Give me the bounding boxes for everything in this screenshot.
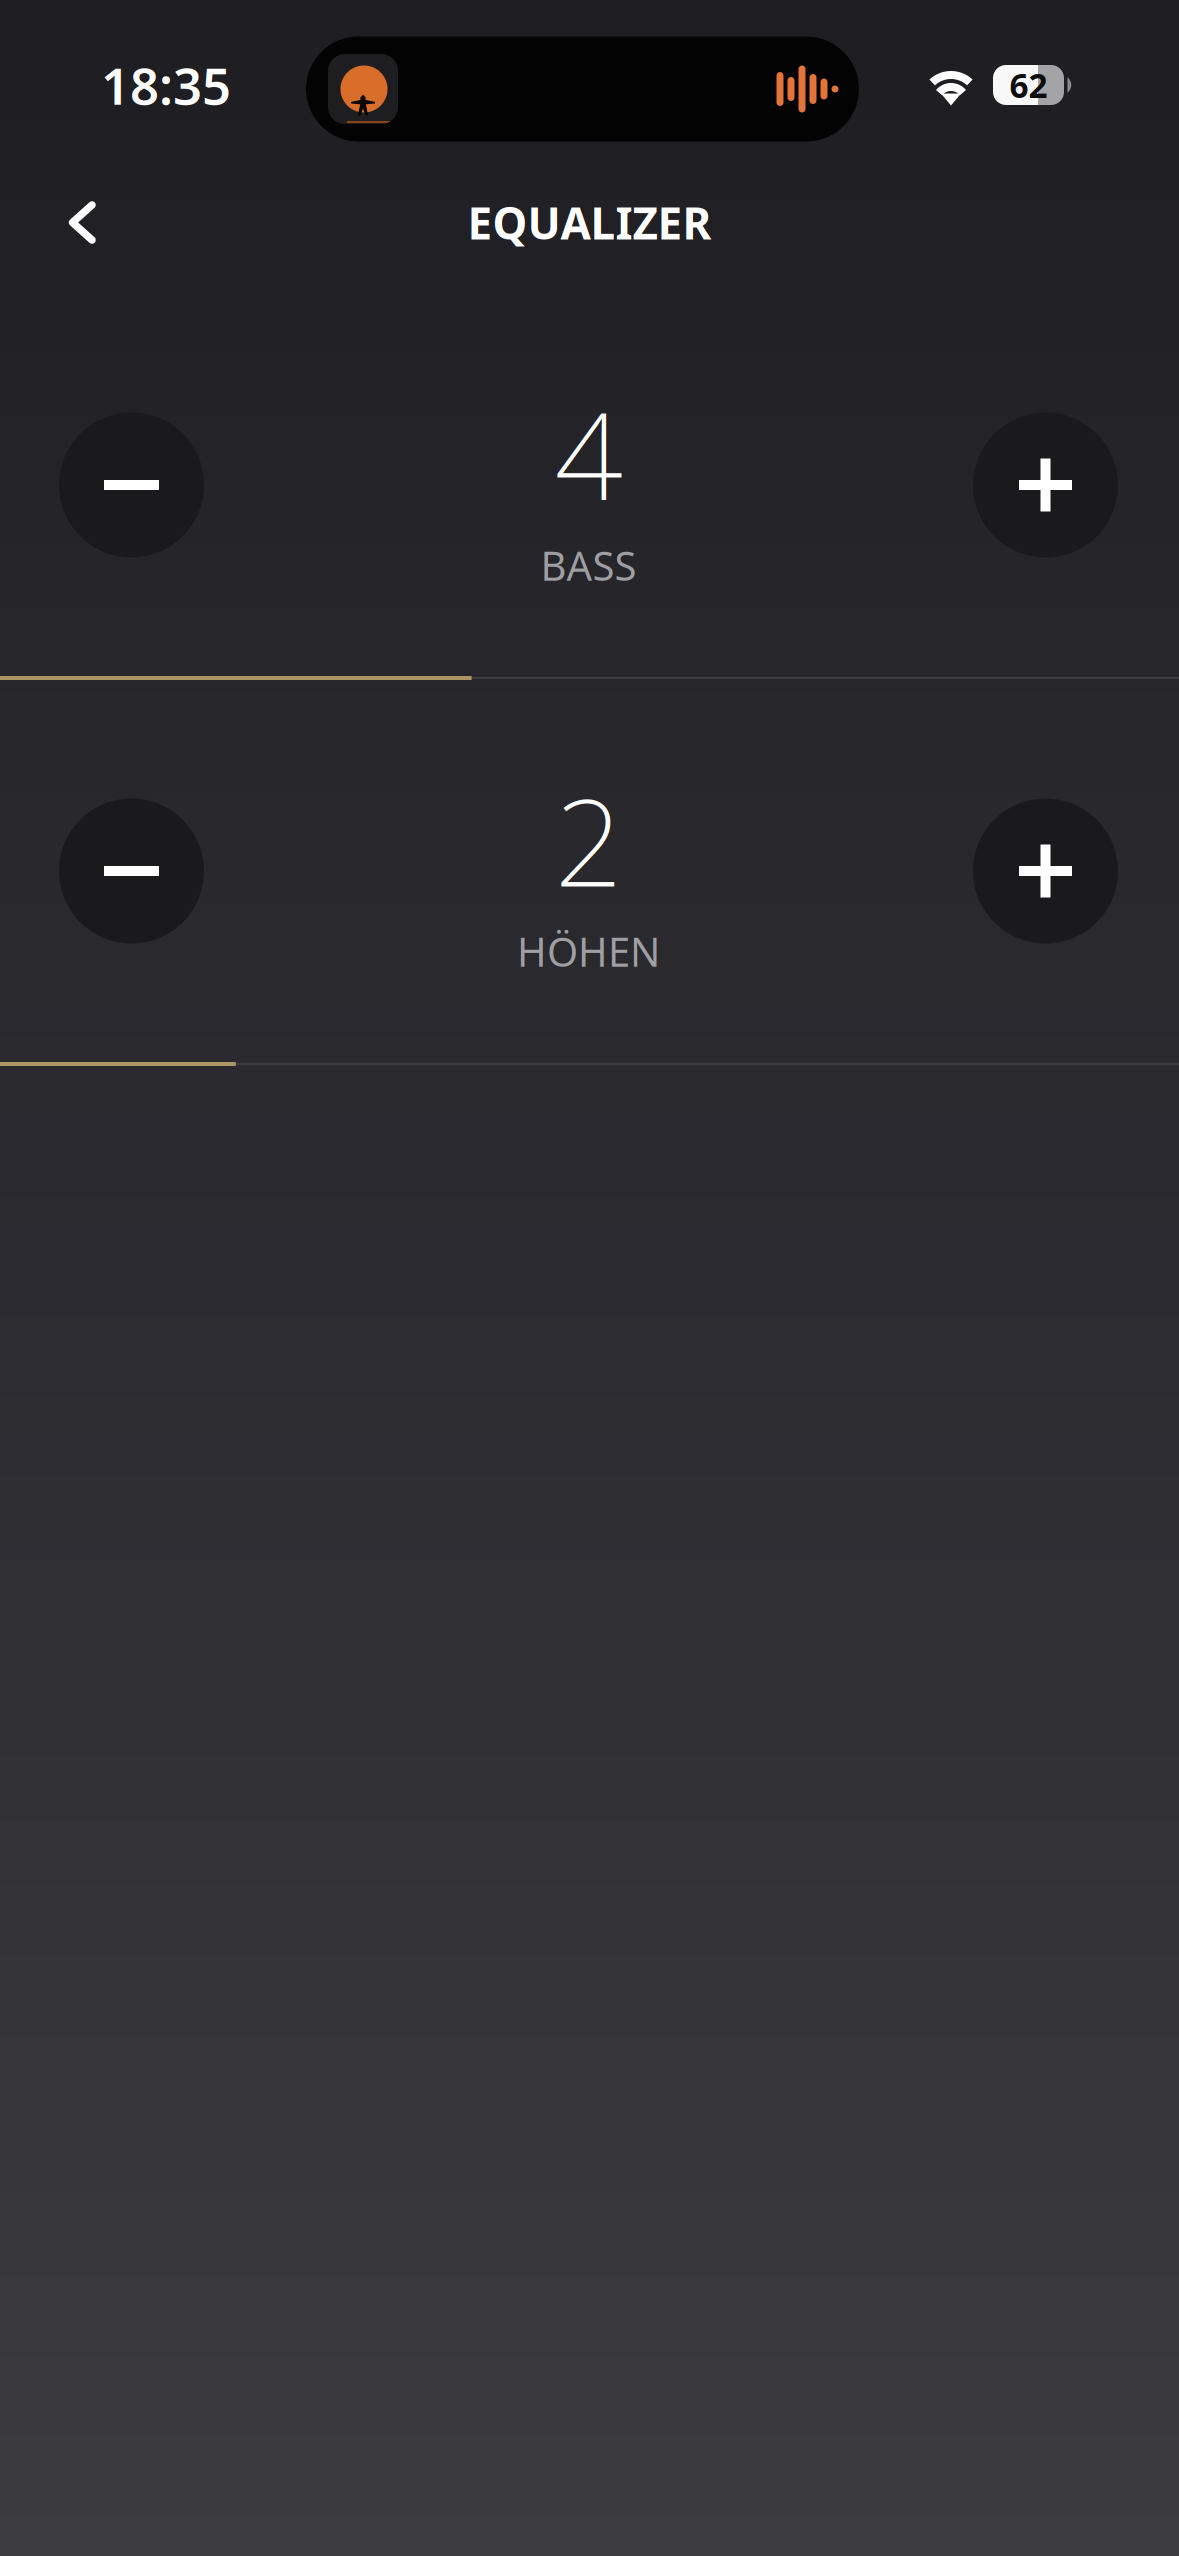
button[interactable]: Increase BASS [973, 412, 1118, 557]
staticText: 2 [554, 760, 622, 920]
button[interactable]: Decrease HÖHEN [59, 798, 204, 943]
staticText: EQUALIZER [467, 193, 711, 252]
button[interactable]: Decrease BASS [59, 412, 204, 557]
button[interactable]: Back [27, 170, 137, 274]
staticText: HÖHEN [517, 925, 660, 978]
staticText: 4 [554, 374, 622, 534]
staticText: BASS [540, 539, 636, 592]
staticText: 18:35 [101, 51, 231, 119]
button[interactable]: Increase HÖHEN [973, 798, 1118, 943]
staticText: 62 [1009, 63, 1047, 107]
